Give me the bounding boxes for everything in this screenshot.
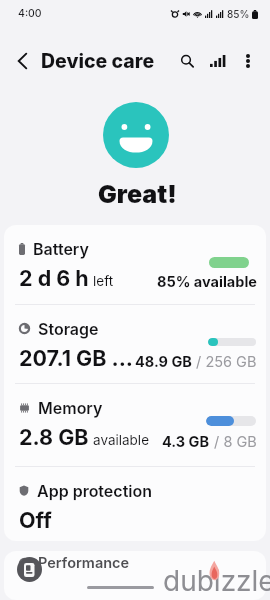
staticText: Memory (38, 398, 103, 417)
staticText: Battery (33, 239, 89, 258)
staticText: 2 d 6 h (19, 265, 89, 291)
button[interactable]: More options (233, 46, 263, 76)
button[interactable]: Performance (4, 551, 266, 600)
staticText: / 256 GB (192, 353, 257, 371)
button[interactable]: Battery (4, 225, 266, 304)
button[interactable]: Storage (4, 305, 266, 383)
staticText: Storage (38, 319, 99, 338)
staticText: 207.1 GB ... (19, 345, 134, 371)
staticText: Performance (38, 554, 130, 572)
staticText: 85% (227, 8, 250, 20)
staticText: 4:00 (18, 7, 42, 20)
staticText: available (93, 432, 150, 448)
staticText: Device care (41, 49, 155, 73)
staticText: 4.3 GB (162, 433, 210, 451)
staticText: App protection (37, 481, 153, 500)
button[interactable]: Search (171, 45, 203, 77)
staticText: Off (19, 507, 52, 533)
button[interactable]: Usage statistics (203, 46, 233, 76)
staticText: dubizzle (163, 564, 270, 598)
button[interactable]: Memory (4, 384, 266, 466)
staticText: 2.8 GB (19, 424, 89, 450)
button[interactable]: Navigate up (7, 46, 37, 76)
staticText: Great! (98, 179, 177, 209)
staticText: left (93, 273, 114, 289)
staticText: 85% available (157, 273, 257, 291)
staticText: 48.9 GB (135, 353, 192, 371)
staticText: / 8 GB (210, 433, 257, 451)
button[interactable]: App protection (4, 467, 266, 541)
